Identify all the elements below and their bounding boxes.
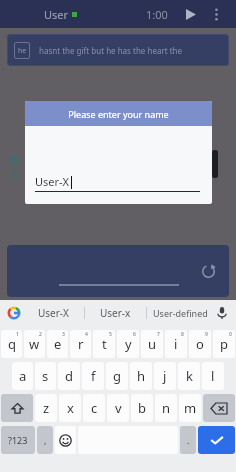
staticText: . bbox=[187, 434, 190, 446]
staticText: r bbox=[78, 335, 84, 353]
staticText: e bbox=[54, 335, 62, 353]
button[interactable]: User-X bbox=[22, 306, 84, 320]
button[interactable]: i bbox=[165, 330, 187, 358]
staticText: 6 bbox=[133, 331, 136, 338]
button[interactable]: User-defined bbox=[147, 307, 214, 319]
button[interactable]: g bbox=[106, 362, 128, 390]
button[interactable]: f bbox=[82, 362, 104, 390]
staticText: 4 bbox=[85, 331, 88, 338]
button[interactable]: Backspace bbox=[203, 394, 235, 422]
staticText: 1 bbox=[16, 331, 19, 338]
button[interactable]: Refresh bbox=[196, 259, 220, 283]
staticText: hasnt the gift but he has the heart the bbox=[39, 45, 182, 56]
button[interactable]: h bbox=[130, 362, 152, 390]
staticText: 8 bbox=[181, 331, 184, 338]
button[interactable]: Comma bbox=[37, 426, 53, 454]
staticText: 2 bbox=[39, 331, 42, 338]
staticText: s bbox=[42, 367, 49, 385]
staticText: l bbox=[211, 367, 215, 385]
staticText: p bbox=[220, 335, 228, 353]
staticText: u bbox=[148, 335, 157, 353]
staticText: f bbox=[91, 367, 96, 385]
staticText: m bbox=[184, 399, 197, 417]
staticText: User-x bbox=[100, 306, 131, 320]
button[interactable]: l bbox=[202, 362, 224, 390]
button[interactable]: Period bbox=[180, 426, 196, 454]
staticText: 5 bbox=[109, 331, 112, 338]
staticText: n bbox=[162, 399, 171, 417]
button[interactable]: d bbox=[58, 362, 80, 390]
button[interactable]: More options bbox=[206, 4, 226, 24]
button[interactable]: j bbox=[154, 362, 176, 390]
button[interactable]: q bbox=[1, 330, 22, 358]
button[interactable]: u bbox=[141, 330, 163, 358]
staticText: i bbox=[174, 335, 178, 353]
staticText: he bbox=[18, 46, 27, 56]
button[interactable]: Done bbox=[198, 426, 235, 454]
button[interactable]: Emoji bbox=[55, 426, 76, 454]
staticText: User-defined bbox=[153, 307, 208, 319]
button[interactable]: ?123 bbox=[1, 426, 35, 454]
button[interactable]: x bbox=[59, 394, 81, 422]
button[interactable]: z bbox=[35, 394, 57, 422]
staticText: h bbox=[137, 367, 146, 385]
staticText: g bbox=[113, 367, 121, 385]
button[interactable]: y bbox=[117, 330, 139, 358]
button[interactable]: he bbox=[7, 34, 229, 66]
staticText: User-X bbox=[35, 174, 70, 189]
button[interactable]: Refresh bbox=[7, 245, 229, 297]
staticText: User-X bbox=[38, 306, 69, 320]
staticText: y bbox=[125, 335, 132, 353]
staticText: j bbox=[163, 367, 167, 385]
staticText: w bbox=[29, 335, 40, 353]
staticText: t bbox=[102, 335, 107, 353]
staticText: Please enter your name bbox=[68, 108, 169, 120]
button[interactable]: b bbox=[131, 394, 153, 422]
staticText: c bbox=[91, 399, 98, 417]
button[interactable]: k bbox=[178, 362, 200, 390]
staticText: ?123 bbox=[8, 434, 28, 446]
button[interactable]: p bbox=[213, 330, 235, 358]
button[interactable]: s bbox=[35, 362, 56, 390]
button[interactable]: e bbox=[47, 330, 68, 358]
button[interactable]: Google bbox=[6, 305, 22, 321]
staticText: , bbox=[44, 434, 47, 446]
staticText: z bbox=[43, 399, 50, 417]
button[interactable]: m bbox=[179, 394, 201, 422]
button[interactable]: Shift bbox=[1, 394, 33, 422]
staticText: 0 bbox=[229, 331, 232, 338]
button[interactable]: o bbox=[189, 330, 211, 358]
staticText: b bbox=[138, 399, 146, 417]
staticText: k bbox=[186, 367, 193, 385]
staticText: 7 bbox=[157, 331, 160, 338]
staticText: 1:00 bbox=[146, 7, 168, 22]
staticText: 9 bbox=[205, 331, 208, 338]
button[interactable]: w bbox=[24, 330, 45, 358]
staticText: o bbox=[196, 335, 204, 353]
button[interactable]: n bbox=[155, 394, 177, 422]
staticText: q bbox=[8, 335, 16, 353]
button[interactable]: User-x bbox=[85, 306, 146, 320]
staticText: v bbox=[115, 399, 122, 417]
button[interactable]: t bbox=[93, 330, 115, 358]
button[interactable]: Voice input bbox=[214, 305, 230, 321]
staticText: a bbox=[19, 367, 27, 385]
staticText: d bbox=[65, 367, 73, 385]
button[interactable]: a bbox=[12, 362, 33, 390]
button[interactable]: v bbox=[107, 394, 129, 422]
staticText: 3 bbox=[62, 331, 65, 338]
button[interactable]: Play bbox=[180, 4, 200, 24]
staticText: x bbox=[67, 399, 74, 417]
button[interactable]: r bbox=[70, 330, 91, 358]
button[interactable]: c bbox=[83, 394, 105, 422]
staticText: User bbox=[44, 7, 69, 22]
